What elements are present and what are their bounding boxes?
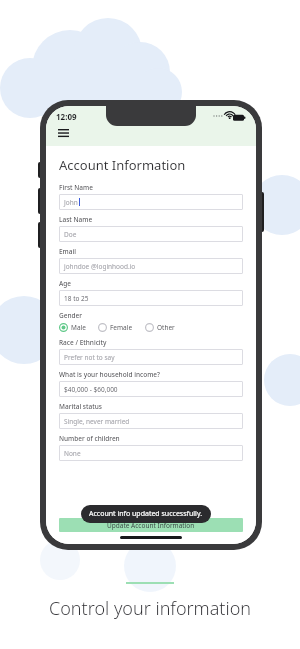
staticText: Female — [110, 323, 133, 332]
staticText: Number of children — [59, 434, 120, 443]
staticText: Age — [59, 279, 72, 288]
button[interactable]: Other — [145, 323, 175, 332]
staticText: Male — [71, 323, 86, 332]
button[interactable]: johndoe @loginhood.io — [59, 258, 243, 274]
staticText: Account info updated successfully. — [89, 509, 203, 519]
button[interactable]: Doe — [59, 226, 243, 242]
staticText: Prefer not to say — [64, 353, 115, 362]
button[interactable]: Male — [59, 323, 86, 332]
staticText: First Name — [59, 183, 93, 192]
button[interactable]: Prefer not to say — [59, 349, 243, 365]
staticText: John — [64, 198, 78, 207]
button[interactable]: Menu — [56, 126, 70, 140]
staticText: Race / Ethnicity — [59, 338, 107, 347]
staticText: None — [64, 449, 81, 458]
staticText: Doe — [64, 230, 77, 239]
staticText: Update Account Information — [107, 521, 195, 530]
button[interactable]: Single, never married — [59, 413, 243, 429]
button[interactable]: 18 to 25 — [59, 290, 243, 306]
staticText: Other — [157, 323, 175, 332]
button[interactable]: Female — [98, 323, 133, 332]
staticText: Marital status — [59, 402, 102, 411]
staticText: Email — [59, 247, 77, 256]
button[interactable]: John — [59, 194, 243, 210]
staticText: johndoe @loginhood.io — [64, 262, 136, 271]
staticText: Control your information — [49, 596, 251, 621]
staticText: 18 to 25 — [64, 294, 89, 303]
staticText: Account Information — [59, 156, 186, 174]
staticText: Gender — [59, 311, 83, 320]
staticText: What is your household income? — [59, 370, 160, 379]
button[interactable]: $40,000 - $60,000 — [59, 381, 243, 397]
button[interactable]: None — [59, 445, 243, 461]
button[interactable]: Update Account Information — [59, 518, 243, 532]
staticText: 12:09 — [56, 111, 77, 122]
staticText: Last Name — [59, 215, 93, 224]
staticText: Single, never married — [64, 417, 130, 426]
staticText: $40,000 - $60,000 — [64, 385, 118, 394]
